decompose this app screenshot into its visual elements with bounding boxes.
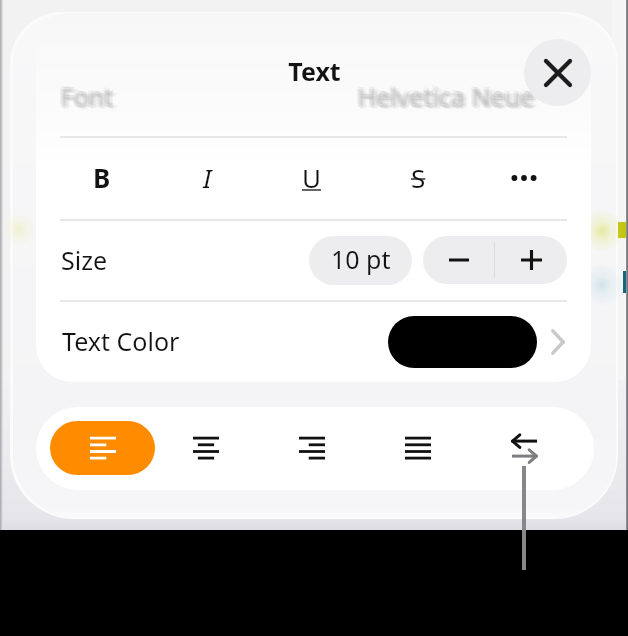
staticText: Font [61,82,114,116]
staticText: Font [61,80,114,114]
button[interactable]: Decrease size [423,236,494,284]
button[interactable]: B [76,151,128,203]
button[interactable]: Align left [50,421,155,475]
staticText: B [93,160,111,195]
staticText: Font [60,78,113,112]
staticText: Helvetica Neue [355,80,532,114]
staticText: Font [59,80,112,114]
staticText: Helvetica Neue [355,77,532,111]
staticText: Helvetica Neue [361,82,538,116]
button[interactable]: Close [524,39,591,106]
staticText: Size [61,243,108,277]
button[interactable]: Text [214,48,414,94]
staticText: Helvetica Neue [358,78,535,112]
staticText: Text Color [62,324,180,358]
button[interactable]: Text direction [492,418,556,479]
staticText: Font [65,80,118,114]
button[interactable]: Text Color [36,301,591,381]
staticText: Helvetica Neue [358,82,535,116]
staticText: Font [62,81,115,115]
button[interactable]: S [392,151,444,203]
staticText: Font [64,82,117,116]
staticText: Helvetica Neue [362,80,539,114]
button[interactable]: U [286,151,338,203]
staticText: Font [60,81,113,115]
button[interactable]: 10 pt [309,236,412,285]
button[interactable]: Align center [174,421,238,475]
staticText: Font [62,78,115,112]
button[interactable]: I [181,151,233,203]
button[interactable]: Align right [280,421,344,475]
button[interactable]: Justify [386,421,450,475]
staticText: Helvetica Neue [357,81,534,115]
staticText: Font [61,78,114,112]
staticText: S [411,160,426,195]
staticText: Helvetica Neue [357,78,534,112]
staticText: 10 pt [331,242,391,276]
staticText: Text [288,54,341,88]
staticText: Helvetica Neue [359,81,536,115]
staticText: U [302,160,322,195]
staticText: Helvetica Neue [356,80,533,114]
button[interactable]: Increase size [495,236,567,284]
staticText: Helvetica Neue [358,80,535,114]
staticText: Font [58,80,111,114]
staticText: Font [58,77,111,111]
staticText: Helvetica Neue [360,80,537,114]
button[interactable]: More text options [498,152,550,204]
staticText: Font [63,80,116,114]
staticText: I [203,160,212,195]
staticText: Helvetica Neue [359,78,536,112]
